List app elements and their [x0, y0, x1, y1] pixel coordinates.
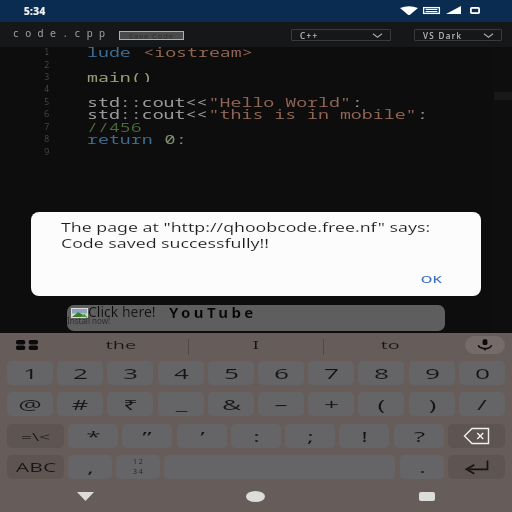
button[interactable]: VS Dark: [414, 29, 502, 41]
button[interactable]: I: [189, 333, 323, 361]
staticText: 5:34: [24, 4, 46, 18]
button[interactable]: 5: [208, 361, 254, 385]
staticText: 4: [44, 82, 50, 94]
staticText: 6: [44, 107, 50, 119]
staticText: C++: [300, 30, 319, 41]
staticText: 5: [44, 95, 50, 107]
staticText: 2: [44, 58, 50, 70]
staticText: 0: [475, 363, 490, 383]
button[interactable]: ABC: [7, 455, 64, 479]
staticText: 2: [73, 363, 88, 383]
button[interactable]: Enter: [448, 455, 505, 479]
staticText: 4: [174, 363, 189, 383]
staticText: "Hello World": [209, 94, 351, 107]
button[interactable]: .: [400, 455, 444, 479]
button[interactable]: +: [308, 392, 354, 416]
staticText: VS Dark: [423, 30, 463, 41]
staticText: !: [360, 426, 369, 446]
button[interactable]: 3: [107, 361, 153, 385]
staticText: ,: [86, 457, 95, 477]
staticText: _: [175, 394, 188, 414]
staticText: 1: [23, 363, 38, 383]
staticText: The page at "http://qhoobcode.free.nf" s…: [61, 218, 431, 236]
staticText: ;: [351, 94, 364, 107]
staticText: lude: [87, 44, 143, 57]
button[interactable]: Keyboard options: [0, 333, 54, 361]
button[interactable]: Voice input: [458, 333, 512, 361]
button[interactable]: =\<: [7, 424, 64, 448]
staticText: to: [381, 337, 401, 353]
staticText: Code saved successfully!!: [61, 234, 269, 252]
button[interactable]: _: [158, 392, 204, 416]
staticText: the: [105, 337, 136, 353]
button[interactable]: C++: [291, 29, 391, 41]
staticText: ’: [200, 426, 205, 446]
staticText: ”: [142, 426, 152, 446]
staticText: :: [252, 426, 261, 446]
staticText: 8: [44, 132, 50, 144]
button[interactable]: Backspace: [448, 424, 505, 448]
button[interactable]: ,: [68, 455, 112, 479]
staticText: I: [253, 337, 259, 353]
staticText: =\<: [21, 429, 50, 444]
staticText: Install now!: [67, 315, 111, 326]
button[interactable]: 7: [308, 361, 354, 385]
staticText: 1: [44, 45, 50, 57]
button[interactable]: 0: [459, 361, 505, 385]
staticText: ₹: [123, 394, 138, 414]
button[interactable]: @: [7, 392, 53, 416]
staticText: #: [71, 394, 89, 414]
button[interactable]: 8: [358, 361, 404, 385]
staticText: Click here!: [88, 305, 156, 321]
staticText: std::cout<<: [87, 94, 209, 107]
button[interactable]: ?: [394, 424, 444, 448]
staticText: 7: [324, 363, 339, 383]
staticText: –: [274, 394, 288, 414]
button[interactable]: ’: [177, 424, 227, 448]
staticText: 3 4: [133, 467, 143, 477]
button[interactable]: (: [358, 392, 404, 416]
staticText: /: [477, 394, 487, 414]
button[interactable]: ₹: [107, 392, 153, 416]
button[interactable]: Click here!: [67, 305, 445, 331]
staticText: ;: [306, 426, 315, 446]
button[interactable]: to: [324, 333, 458, 361]
button[interactable]: Save Code: [119, 31, 184, 40]
button[interactable]: ;: [285, 424, 335, 448]
button[interactable]: !: [339, 424, 389, 448]
button[interactable]: *: [68, 424, 118, 448]
button[interactable]: –: [258, 392, 304, 416]
button[interactable]: Recents: [341, 480, 512, 512]
staticText: 5: [224, 363, 239, 383]
staticText: 9: [44, 145, 50, 157]
staticText: YouTube: [169, 305, 257, 322]
button[interactable]: the: [54, 333, 188, 361]
staticText: 7: [44, 120, 50, 132]
staticText: code.cpp: [13, 26, 112, 40]
staticText: ABC: [15, 459, 57, 475]
button[interactable]: :: [231, 424, 281, 448]
staticText: 0;: [164, 131, 187, 144]
staticText: &: [222, 394, 241, 414]
staticText: Save Code: [129, 31, 175, 40]
staticText: return: [87, 131, 164, 144]
staticText: "this is in mobile": [209, 106, 417, 119]
staticText: 3: [123, 363, 138, 383]
button[interactable]: &: [208, 392, 254, 416]
button[interactable]: OK: [401, 268, 461, 290]
button[interactable]: 9: [409, 361, 455, 385]
button[interactable]: ”: [122, 424, 172, 448]
button[interactable]: Back: [0, 480, 170, 512]
staticText: OK: [421, 273, 442, 285]
button[interactable]: ): [409, 392, 455, 416]
button[interactable]: Home: [170, 480, 341, 512]
button[interactable]: #: [57, 392, 103, 416]
staticText: <iostream>: [143, 44, 254, 57]
button[interactable]: 2: [57, 361, 103, 385]
button[interactable]: 6: [258, 361, 304, 385]
button[interactable]: /: [459, 392, 505, 416]
button[interactable]: 4: [158, 361, 204, 385]
button[interactable]: 1: [7, 361, 53, 385]
button[interactable]: Numbers: [116, 455, 160, 479]
